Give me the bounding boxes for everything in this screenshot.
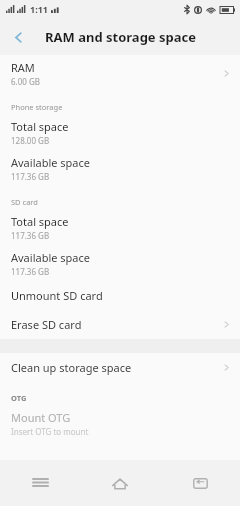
button[interactable]: Back <box>0 19 36 55</box>
staticText: Phone storage <box>11 102 63 112</box>
button[interactable]: Home <box>80 460 160 506</box>
staticText: 6.00 GB <box>11 76 40 87</box>
button[interactable]: Available space <box>0 245 240 281</box>
staticText: Mount OTG <box>11 410 71 425</box>
button[interactable]: Total space <box>0 114 240 150</box>
staticText: SD card <box>11 197 38 207</box>
staticText: 117.36 GB <box>11 230 50 241</box>
staticText: OTG <box>11 393 27 403</box>
button[interactable]: Erase SD card <box>0 310 240 339</box>
button[interactable]: Available space <box>0 150 240 186</box>
staticText: Total space <box>11 214 69 229</box>
staticText: RAM and storage space <box>45 28 196 46</box>
staticText: Unmount SD card <box>11 288 103 303</box>
button[interactable]: RAM <box>0 55 240 91</box>
staticText: Erase SD card <box>11 317 82 332</box>
staticText: RAM <box>11 60 35 75</box>
button[interactable]: Back <box>160 460 240 506</box>
staticText: Available space <box>11 155 90 170</box>
staticText: 117.36 GB <box>11 171 50 182</box>
button[interactable]: Total space <box>0 209 240 245</box>
button[interactable]: Clean up storage space <box>0 353 240 382</box>
staticText: Available space <box>11 250 90 265</box>
staticText: Clean up storage space <box>11 360 132 375</box>
staticText: 1:11 <box>30 3 48 15</box>
staticText: 117.36 GB <box>11 266 50 277</box>
button[interactable]: Unmount SD card <box>0 281 240 310</box>
button[interactable]: Recents <box>0 460 80 506</box>
staticText: Total space <box>11 119 69 134</box>
staticText: Insert OTG to mount <box>11 426 89 437</box>
staticText: 128.00 GB <box>11 135 50 146</box>
